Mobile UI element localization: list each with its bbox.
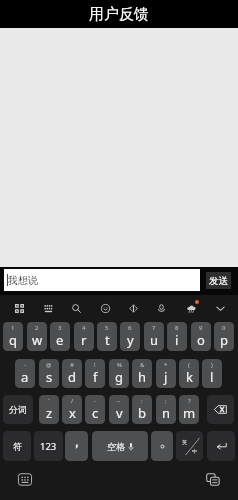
- staticText: b: [138, 404, 146, 422]
- button[interactable]: Enter: [207, 431, 235, 461]
- button[interactable]: `: [39, 395, 59, 424]
- staticText: d: [68, 368, 76, 386]
- button[interactable]: Search: [65, 296, 87, 320]
- button[interactable]: ?: [179, 395, 199, 424]
- button[interactable]: ;: [156, 395, 176, 424]
- staticText: o: [197, 331, 205, 349]
- staticText: g: [115, 368, 123, 386]
- button[interactable]: (: [179, 359, 199, 388]
- button[interactable]: Hide keyboard: [14, 468, 36, 490]
- staticText: p: [220, 331, 228, 349]
- button[interactable]: 2: [27, 322, 47, 351]
- staticText: 123: [40, 440, 57, 453]
- staticText: j: [164, 368, 168, 386]
- staticText: 9: [199, 324, 203, 332]
- staticText: &: [140, 361, 145, 369]
- button[interactable]: #: [62, 359, 82, 388]
- staticText: 3: [58, 324, 62, 332]
- button[interactable]: 6: [120, 322, 140, 351]
- button[interactable]: 分词: [3, 395, 33, 424]
- staticText: q: [9, 331, 17, 349]
- button[interactable]: &: [132, 359, 152, 388]
- staticText: e: [56, 331, 64, 349]
- button[interactable]: 3: [50, 322, 70, 351]
- button[interactable]: Switch language: [176, 431, 203, 461]
- staticText: k: [186, 368, 193, 386]
- staticText: c: [92, 404, 99, 422]
- staticText: ?: [188, 397, 191, 405]
- button[interactable]: Keyboard layout: [37, 296, 59, 320]
- button[interactable]: Symbols: [8, 296, 30, 320]
- button[interactable]: 8: [167, 322, 187, 351]
- staticText: w: [32, 331, 43, 349]
- staticText: #: [70, 361, 74, 369]
- staticText: f: [93, 368, 98, 386]
- button[interactable]: Weather: [180, 296, 202, 320]
- button[interactable]: Collapse keyboard: [209, 296, 231, 320]
- staticText: (: [188, 361, 190, 369]
- button[interactable]: %: [109, 359, 129, 388]
- button[interactable]: 9: [191, 322, 211, 351]
- staticText: h: [138, 368, 147, 386]
- staticText: 4: [82, 324, 86, 332]
- staticText: l: [210, 368, 214, 386]
- button[interactable]: ~: [109, 395, 129, 424]
- staticText: s: [46, 368, 53, 386]
- button[interactable]: 我想说: [4, 269, 200, 291]
- button[interactable]: -: [15, 359, 35, 388]
- staticText: ): [211, 361, 213, 369]
- staticText: 空格: [107, 441, 125, 452]
- staticText: 6: [128, 324, 132, 332]
- button[interactable]: Emoji: [94, 296, 116, 320]
- button[interactable]: 1: [3, 322, 23, 351]
- staticText: v: [116, 404, 123, 422]
- button[interactable]: 4: [74, 322, 94, 351]
- button[interactable]: /: [62, 395, 82, 424]
- button[interactable]: Clipboard: [202, 468, 224, 490]
- staticText: -: [24, 361, 26, 369]
- button[interactable]: Move cursor: [122, 296, 144, 320]
- button[interactable]: 符: [3, 431, 31, 461]
- button[interactable]: 0: [214, 322, 234, 351]
- button[interactable]: !: [85, 359, 105, 388]
- staticText: 8: [175, 324, 179, 332]
- staticText: 中: [192, 448, 197, 454]
- staticText: n: [162, 404, 171, 422]
- button[interactable]: 123: [34, 431, 63, 461]
- button[interactable]: Delete: [207, 395, 234, 424]
- staticText: m: [183, 404, 196, 422]
- button[interactable]: ): [202, 359, 222, 388]
- staticText: 2: [35, 324, 39, 332]
- button[interactable]: Space: [92, 431, 148, 461]
- staticText: 我想说: [8, 274, 38, 287]
- staticText: :: [141, 397, 143, 405]
- staticText: 英: [182, 439, 187, 445]
- button[interactable]: 7: [144, 322, 164, 351]
- staticText: u: [150, 331, 159, 349]
- button[interactable]: *: [156, 359, 176, 388]
- button[interactable]: -: [85, 395, 105, 424]
- staticText: -: [94, 397, 96, 405]
- staticText: *: [164, 361, 168, 369]
- staticText: r: [81, 331, 87, 349]
- staticText: 7: [152, 324, 156, 332]
- staticText: `: [48, 397, 50, 405]
- staticText: 符: [13, 441, 22, 452]
- button[interactable]: Comma: [65, 431, 88, 461]
- staticText: 5: [105, 324, 109, 332]
- button[interactable]: 发送: [206, 272, 231, 289]
- staticText: a: [21, 368, 29, 386]
- button[interactable]: @: [39, 359, 59, 388]
- staticText: @: [46, 361, 52, 369]
- staticText: ~: [117, 397, 121, 405]
- button[interactable]: 5: [97, 322, 117, 351]
- button[interactable]: Period: [151, 431, 173, 461]
- staticText: 0: [222, 324, 226, 332]
- staticText: i: [175, 331, 179, 349]
- staticText: !: [94, 361, 96, 369]
- staticText: y: [127, 331, 134, 349]
- button[interactable]: Voice input: [150, 296, 172, 320]
- staticText: 发送: [209, 275, 228, 287]
- staticText: 1: [11, 324, 15, 332]
- button[interactable]: :: [132, 395, 152, 424]
